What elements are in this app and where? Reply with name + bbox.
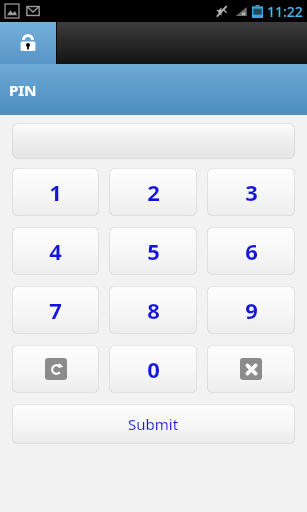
staticText: 1 xyxy=(49,177,62,207)
staticText: 0 xyxy=(147,354,160,384)
button[interactable]: 9 xyxy=(207,286,295,334)
button[interactable]: 4 xyxy=(12,227,99,275)
staticText: 9 xyxy=(245,295,258,325)
button[interactable]: 2 xyxy=(109,168,197,216)
button[interactable]: 5 xyxy=(109,227,197,275)
staticText: 8 xyxy=(147,295,160,325)
button[interactable]: Clear xyxy=(12,345,99,393)
staticText: 6 xyxy=(245,236,258,266)
button[interactable]: 6 xyxy=(207,227,295,275)
button[interactable]: 0 xyxy=(109,345,197,393)
staticText: 5 xyxy=(147,236,160,266)
button[interactable] xyxy=(12,123,295,159)
button[interactable]: 7 xyxy=(12,286,99,334)
staticText: 4 xyxy=(49,236,62,266)
staticText: 11:22 xyxy=(267,2,303,21)
staticText: 3 xyxy=(245,177,258,207)
staticText: 2 xyxy=(147,177,160,207)
button[interactable]: 3 xyxy=(207,168,295,216)
staticText: PIN xyxy=(9,80,37,100)
button[interactable]: App icon, lock xyxy=(0,22,56,64)
button[interactable]: 1 xyxy=(12,168,99,216)
button[interactable]: 8 xyxy=(109,286,197,334)
staticText: 7 xyxy=(49,295,62,325)
button[interactable]: Backspace xyxy=(207,345,295,393)
staticText: Submit xyxy=(128,414,179,434)
button[interactable]: Submit xyxy=(12,404,295,444)
